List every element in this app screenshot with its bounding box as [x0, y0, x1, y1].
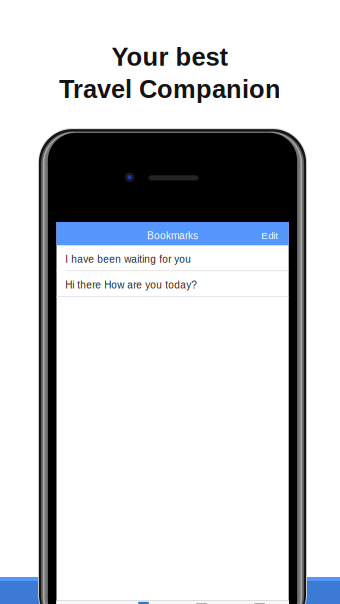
button[interactable]: Tab — [56, 601, 114, 604]
staticText: I have been waiting for you — [65, 254, 191, 265]
staticText: Travel Companion — [59, 75, 281, 103]
staticText: Hi there How are you today? — [65, 279, 197, 291]
staticText: Bookmarks — [147, 230, 198, 241]
button[interactable]: Hi there How are you today? — [56, 271, 289, 296]
button[interactable]: Edit — [253, 221, 289, 246]
button[interactable]: Tab — [114, 601, 172, 604]
staticText: Edit — [261, 230, 278, 241]
staticText: Your best — [111, 42, 228, 71]
button[interactable]: Tab — [231, 601, 289, 604]
button[interactable]: I have been waiting for you — [56, 245, 289, 270]
button[interactable]: Tab — [173, 601, 231, 604]
